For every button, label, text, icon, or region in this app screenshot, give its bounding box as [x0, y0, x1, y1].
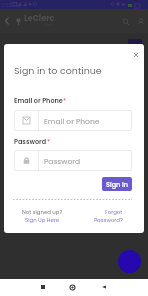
staticText: Sign Up Here	[25, 216, 60, 224]
staticText: Password	[14, 137, 47, 146]
staticText: Email or Phone	[44, 116, 100, 126]
staticText: Forgot	[105, 208, 123, 216]
button[interactable]: Close	[130, 49, 142, 61]
button[interactable]: Recents	[35, 279, 51, 295]
button[interactable]: Back	[96, 279, 112, 295]
staticText: Sign in to continue	[14, 64, 102, 77]
button[interactable]: Search	[118, 14, 133, 29]
button[interactable]: Not signed up?	[18, 208, 66, 224]
staticText: 11:52 AM	[1, 2, 21, 9]
staticText: Not signed up?	[22, 208, 63, 216]
button[interactable]: Chat	[118, 250, 141, 273]
staticText: Email or Phone	[14, 96, 63, 105]
button[interactable]: Email or Phone	[14, 110, 132, 131]
staticText: Password	[44, 156, 81, 166]
button[interactable]: Sign In	[102, 177, 132, 191]
staticText: *	[47, 137, 51, 146]
staticText: *	[63, 96, 67, 105]
button[interactable]: Forgot	[74, 208, 123, 224]
button[interactable]: Back	[0, 14, 14, 28]
button[interactable]: Password	[14, 150, 132, 171]
button[interactable]: Account	[133, 14, 148, 29]
staticText: Password?	[94, 216, 123, 224]
staticText: LeClerc	[24, 13, 55, 24]
button[interactable]: Home	[64, 279, 80, 295]
staticText: Sign In	[106, 180, 128, 189]
